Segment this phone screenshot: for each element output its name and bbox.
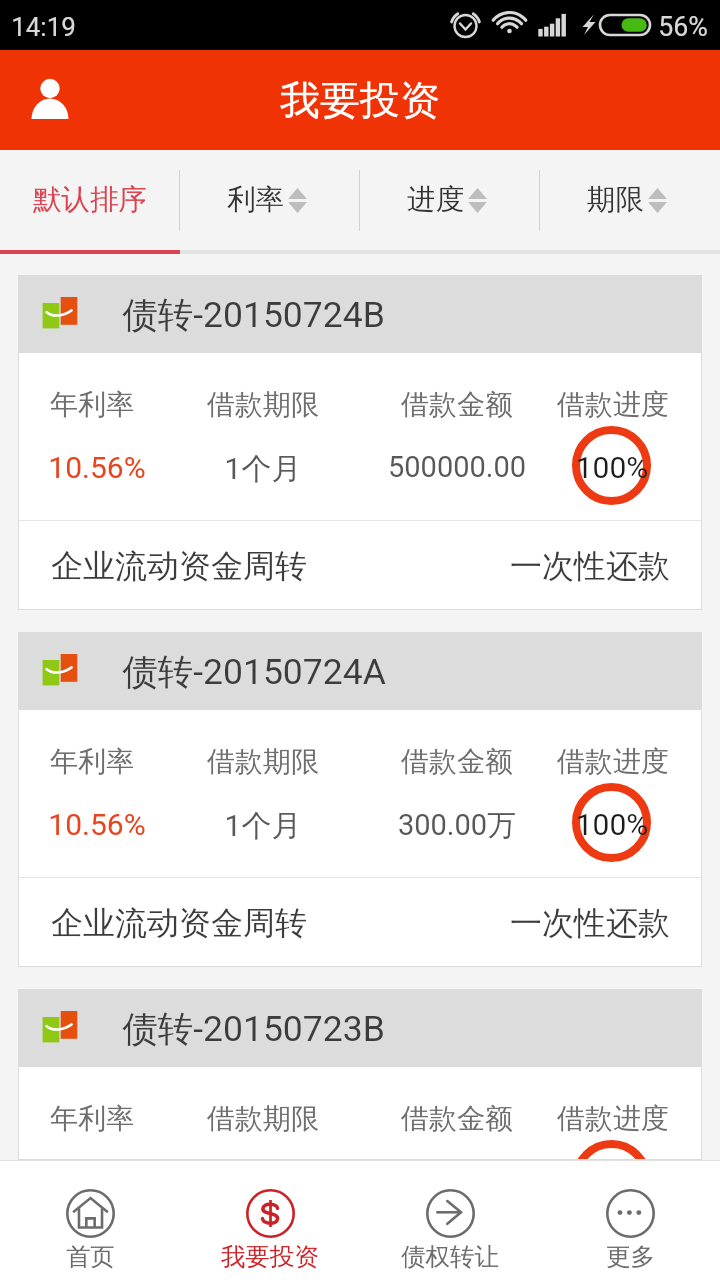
- button[interactable]: Account: [8, 58, 92, 142]
- staticText: 债转-20150724A: [122, 650, 386, 695]
- staticText: 企业流动资金周转: [51, 546, 307, 586]
- button[interactable]: 债转-20150723B: [18, 989, 702, 1160]
- staticText: 债转-20150724B: [122, 293, 385, 338]
- button[interactable]: 我要投资: [180, 1161, 360, 1280]
- button[interactable]: 债转-20150724B: [18, 275, 702, 610]
- staticText: 100%: [522, 1164, 702, 1199]
- staticText: 一次性还款: [510, 546, 670, 586]
- staticText: 借款金额: [367, 1101, 547, 1136]
- staticText: 年利率: [2, 1101, 182, 1136]
- staticText: 年利率: [2, 744, 182, 779]
- staticText: 100%: [522, 450, 702, 485]
- staticText: 首页: [66, 1241, 115, 1272]
- staticText: 1个月: [173, 450, 353, 488]
- button[interactable]: 债转-20150724A: [18, 632, 702, 967]
- button[interactable]: 首页: [0, 1161, 180, 1280]
- staticText: 借款金额: [367, 744, 547, 779]
- staticText: 10.56%: [7, 1164, 187, 1199]
- button[interactable]: 债权转让: [360, 1161, 540, 1280]
- staticText: 300.00万: [367, 1164, 547, 1201]
- button[interactable]: 期限: [540, 150, 720, 250]
- staticText: 10.56%: [7, 450, 187, 485]
- staticText: 借款期限: [173, 387, 353, 422]
- staticText: 债权转让: [401, 1241, 499, 1272]
- staticText: 债转-20150723B: [122, 1007, 385, 1052]
- staticText: 利率: [227, 182, 284, 218]
- staticText: 借款期限: [173, 1101, 353, 1136]
- staticText: 借款期限: [173, 744, 353, 779]
- staticText: 10.56%: [7, 807, 187, 842]
- staticText: 借款进度: [523, 387, 703, 422]
- staticText: 300.00万: [367, 807, 547, 844]
- staticText: 进度: [407, 182, 464, 218]
- staticText: 14:19: [11, 12, 76, 42]
- staticText: 我要投资: [221, 1241, 319, 1272]
- staticText: 500000.00: [367, 450, 547, 484]
- staticText: 56%: [658, 11, 708, 42]
- staticText: 100%: [522, 807, 702, 842]
- staticText: 1个月: [173, 1164, 353, 1202]
- staticText: 1个月: [173, 807, 353, 845]
- staticText: 更多: [606, 1241, 655, 1272]
- staticText: 期限: [587, 182, 644, 218]
- button[interactable]: 更多: [540, 1161, 720, 1280]
- staticText: 年利率: [2, 387, 182, 422]
- staticText: 默认排序: [33, 182, 147, 218]
- staticText: 借款金额: [367, 387, 547, 422]
- staticText: 借款进度: [523, 1101, 703, 1136]
- staticText: 一次性还款: [510, 903, 670, 943]
- staticText: 借款进度: [523, 744, 703, 779]
- button[interactable]: 进度: [360, 150, 540, 250]
- button[interactable]: 默认排序: [0, 150, 180, 250]
- staticText: 我要投资: [280, 75, 440, 125]
- button[interactable]: 利率: [180, 150, 360, 250]
- staticText: 企业流动资金周转: [51, 903, 307, 943]
